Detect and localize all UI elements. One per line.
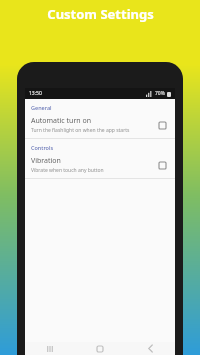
staticText: Automatic turn on [31, 116, 91, 126]
button[interactable]: Toggle Vibration [155, 158, 169, 172]
button[interactable]: Home [75, 342, 125, 355]
staticText: General [31, 104, 52, 111]
staticText: Vibrate when touch any button [31, 167, 104, 174]
staticText: Controls [31, 144, 54, 151]
button[interactable]: Back [125, 342, 175, 355]
button[interactable]: Recents [25, 342, 75, 355]
staticText: Vibration [31, 156, 61, 166]
staticText: Turn the flashlight on when the app star… [31, 127, 130, 134]
button[interactable]: Vibration [25, 153, 175, 178]
staticText: 70% [155, 90, 165, 97]
button[interactable]: Toggle Automatic turn on [155, 118, 169, 132]
button[interactable]: Automatic turn on [25, 113, 175, 138]
staticText: Custom Settings [47, 5, 154, 23]
staticText: 13:50 [29, 90, 42, 97]
